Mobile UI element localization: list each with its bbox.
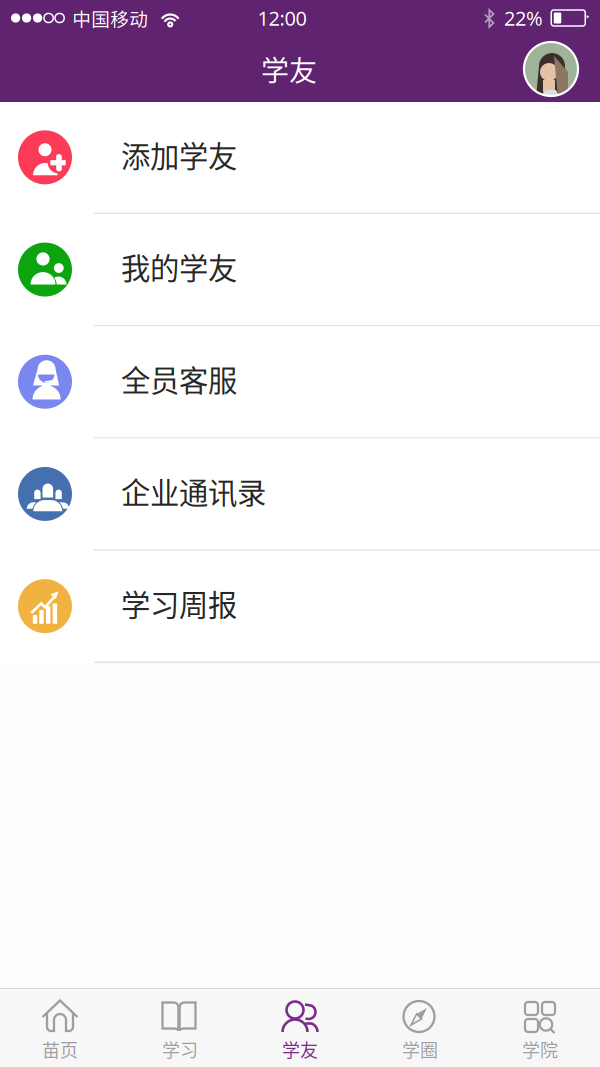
button[interactable]: 学院 xyxy=(480,989,600,1067)
staticText: 学院 xyxy=(522,1036,558,1062)
button[interactable]: 添加学友 xyxy=(0,102,600,214)
button[interactable]: 我的学友 xyxy=(0,214,600,326)
staticText: 学圈 xyxy=(402,1036,438,1062)
staticText: 学习 xyxy=(162,1036,198,1062)
button[interactable]: 学友 xyxy=(240,989,360,1067)
staticText: 全员客服 xyxy=(121,357,237,400)
button[interactable]: 全员客服 xyxy=(0,326,600,439)
button[interactable]: 苗页 xyxy=(0,989,120,1067)
staticText: 添加学友 xyxy=(121,133,237,176)
staticText: 企业通讯录 xyxy=(121,470,266,512)
staticText: 学友 xyxy=(282,1036,318,1062)
staticText: 苗页 xyxy=(42,1036,78,1062)
button[interactable]: 学习 xyxy=(120,989,240,1067)
staticText: 12:00 xyxy=(258,5,307,31)
button[interactable]: 学习周报 xyxy=(0,551,600,663)
button[interactable]: 学圈 xyxy=(360,989,480,1067)
staticText: 学友 xyxy=(261,49,317,89)
button[interactable]: 个人资料 xyxy=(524,42,578,96)
staticText: 我的学友 xyxy=(121,245,237,288)
staticText: 学习周报 xyxy=(121,582,237,624)
staticText: 中国移动 xyxy=(72,4,148,31)
button[interactable]: 企业通讯录 xyxy=(0,439,600,551)
staticText: 22% xyxy=(504,5,543,31)
